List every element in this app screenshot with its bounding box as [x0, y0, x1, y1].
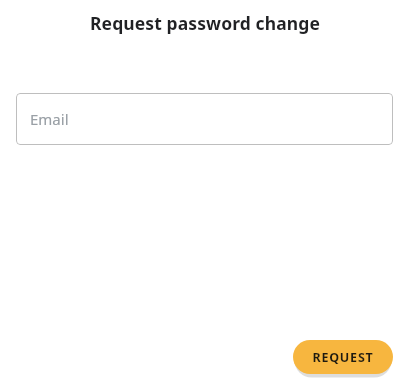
button[interactable]: Email: [16, 93, 393, 145]
staticText: Email: [30, 109, 69, 129]
staticText: REQUEST: [312, 349, 374, 366]
button[interactable]: Request password change: [293, 340, 393, 374]
staticText: Request password change: [90, 11, 320, 35]
